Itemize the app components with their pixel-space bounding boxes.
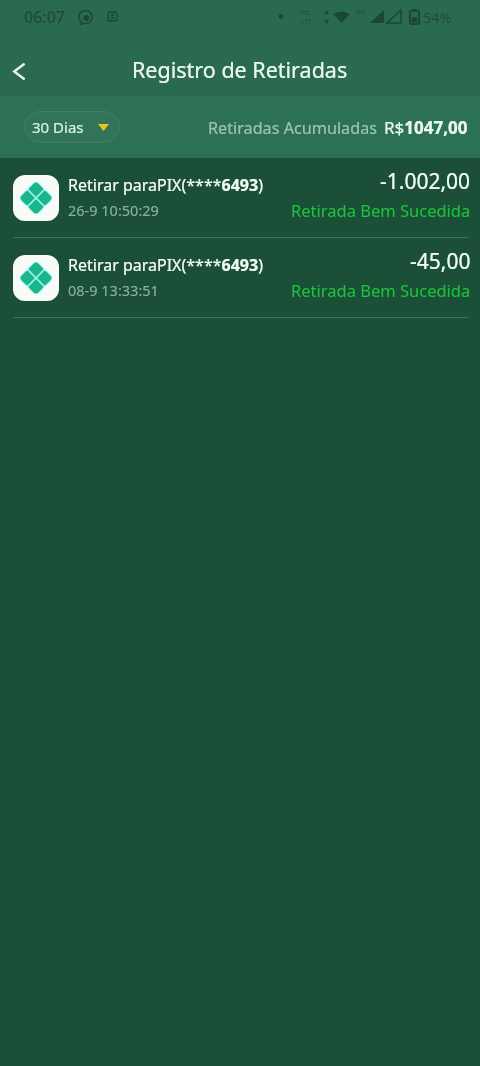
button[interactable]: Back: [0, 49, 41, 93]
staticText: 08-9 13:33:51: [68, 280, 159, 300]
staticText: Retiradas Acumuladas: [208, 117, 377, 139]
staticText: Retirada Bem Sucedida: [291, 279, 471, 301]
staticText: 06:07: [24, 6, 65, 28]
button[interactable]: Retirar paraPIX(****6493): [0, 238, 480, 317]
staticText: Retirar paraPIX(****6493): [68, 254, 263, 276]
staticText: -45,00: [410, 247, 471, 276]
staticText: 26-9 10:50:29: [68, 200, 159, 220]
staticText: R$1047,00: [384, 116, 468, 139]
staticText: 4G: [356, 7, 366, 17]
staticText: 54%: [423, 7, 452, 27]
staticText: Registro de Retiradas: [132, 55, 348, 84]
staticText: -1.002,00: [380, 167, 471, 196]
staticText: LTE: [301, 17, 312, 26]
staticText: VoL: [300, 8, 312, 17]
button[interactable]: 30 Dias: [24, 111, 120, 143]
staticText: Retirada Bem Sucedida: [291, 199, 471, 221]
button[interactable]: Retirar paraPIX(****6493): [0, 158, 480, 237]
staticText: Retirar paraPIX(****6493): [68, 174, 263, 196]
staticText: 30 Dias: [32, 117, 84, 137]
